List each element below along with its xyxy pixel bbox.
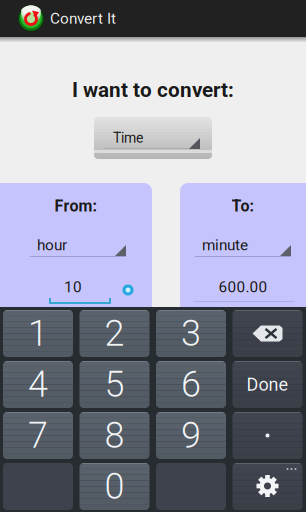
button[interactable]: 1	[3, 310, 73, 357]
staticText: Done	[246, 374, 288, 395]
staticText: minute	[202, 236, 248, 254]
button[interactable]: 8	[79, 412, 149, 459]
staticText: 600.00	[218, 278, 267, 296]
button[interactable]: 5	[79, 361, 149, 408]
button[interactable]: 4	[3, 361, 73, 408]
button[interactable]: 3	[156, 310, 226, 357]
button[interactable]: Time	[94, 117, 212, 159]
staticText: 2	[104, 312, 124, 355]
button[interactable]: Swap units	[122, 284, 134, 296]
staticText: From:	[54, 197, 97, 215]
staticText: 4	[28, 363, 48, 406]
staticText: Convert It	[50, 9, 116, 27]
staticText: To:	[231, 197, 254, 215]
button[interactable]: 6	[156, 361, 226, 408]
staticText: 0	[104, 465, 124, 508]
staticText: hour	[37, 236, 67, 254]
staticText: 5	[104, 363, 124, 406]
button[interactable]: Delete	[232, 310, 302, 357]
staticText: 1	[28, 312, 48, 355]
staticText: 7	[28, 414, 48, 457]
button[interactable]: 7	[3, 412, 73, 459]
staticText: 10	[64, 278, 82, 296]
button[interactable]: minute	[195, 236, 291, 258]
button[interactable]: 0	[79, 463, 149, 510]
staticText: 8	[104, 414, 124, 457]
staticText: 9	[181, 414, 201, 457]
button[interactable]: Decimal point	[232, 412, 302, 459]
staticText: I want to convert:	[72, 78, 234, 102]
staticText: 6	[181, 363, 201, 406]
staticText: 3	[181, 312, 201, 355]
staticText: Time	[113, 130, 143, 146]
button[interactable]: 2	[79, 310, 149, 357]
button[interactable]: hour	[30, 236, 126, 258]
button[interactable]: Done	[232, 361, 302, 408]
button[interactable]: 9	[156, 412, 226, 459]
button[interactable]: Settings	[232, 463, 302, 510]
